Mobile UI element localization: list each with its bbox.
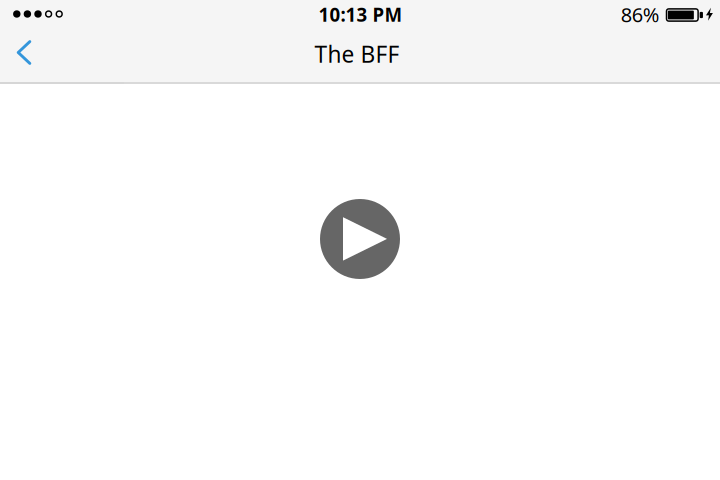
staticText: 86% xyxy=(621,1,660,28)
staticText: 10:13 PM xyxy=(318,2,402,27)
button[interactable]: Play xyxy=(320,199,400,279)
staticText: The BFF xyxy=(314,39,399,69)
button[interactable]: Back xyxy=(2,33,46,77)
